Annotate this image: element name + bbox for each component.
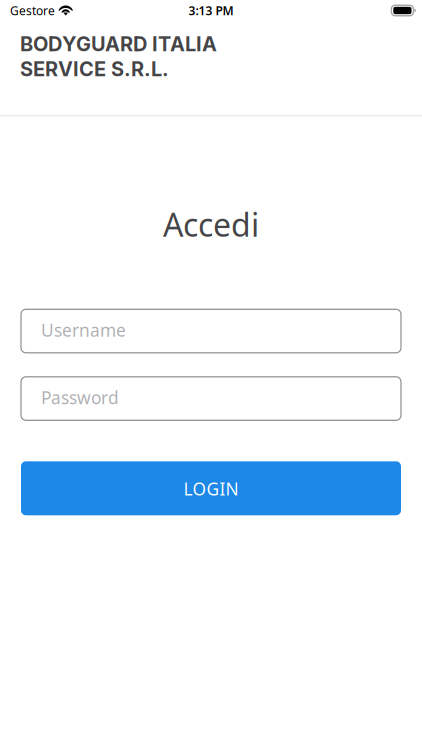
staticText: Gestore (10, 2, 55, 18)
staticText: Username (41, 318, 126, 341)
staticText: SERVICE S.R.L. (20, 57, 169, 81)
button[interactable]: LOGIN (21, 461, 401, 515)
staticText: BODYGUARD ITALIA (20, 32, 217, 56)
staticText: Password (41, 386, 119, 409)
staticText: Accedi (163, 203, 259, 246)
staticText: 3:13 PM (188, 2, 233, 18)
button[interactable]: Username (21, 309, 401, 353)
button[interactable]: Password (21, 377, 401, 420)
staticText: LOGIN (183, 477, 238, 500)
